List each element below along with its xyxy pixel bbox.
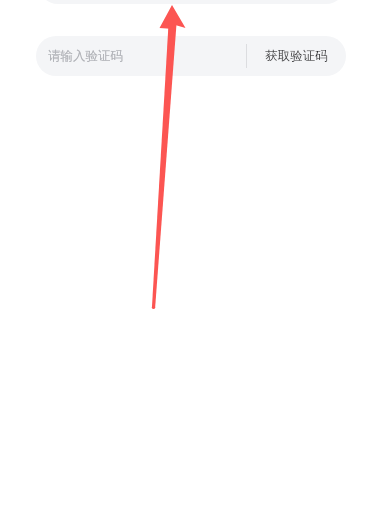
- button[interactable]: 获取验证码: [247, 36, 346, 76]
- button[interactable]: 请输入验证码: [36, 36, 246, 76]
- other: Annotation arrow pointing to the verific…: [0, 0, 381, 515]
- staticText: 获取验证码: [265, 48, 328, 64]
- staticText: 请输入验证码: [48, 48, 123, 64]
